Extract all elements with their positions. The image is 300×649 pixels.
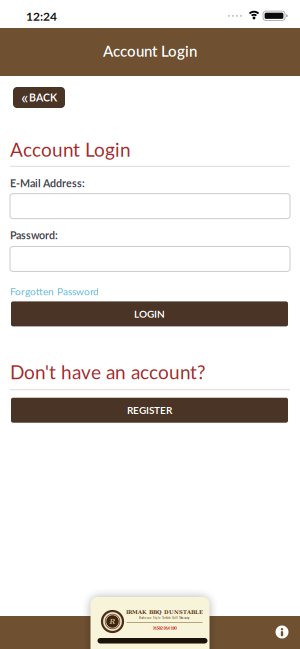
staticText: Account Login — [103, 42, 197, 60]
staticText: 12:24 — [26, 9, 57, 23]
staticText: R — [109, 617, 115, 626]
staticText: LOGIN — [134, 308, 165, 320]
staticText: Password: — [10, 229, 58, 241]
staticText: REGISTER — [127, 404, 172, 416]
button[interactable]: Info — [275, 625, 288, 638]
staticText: BACK — [29, 91, 57, 104]
staticText: Barbecue Style Turkish Grill Takeaway — [139, 616, 190, 620]
staticText: IRMAK BBQ DUNSTABLE — [126, 609, 203, 615]
staticText: E-Mail Address: — [10, 177, 85, 190]
staticText: « — [21, 87, 28, 107]
staticText: Don't have an account? — [10, 360, 206, 383]
staticText: Account Login — [10, 138, 131, 161]
staticText: Forgotten Password — [10, 285, 99, 297]
button[interactable]: REGISTER — [10, 398, 290, 423]
staticText: 01582 814 180 — [152, 625, 176, 630]
button[interactable]: Forgotten Password — [10, 285, 99, 297]
button[interactable]: « — [13, 87, 65, 108]
button[interactable]: LOGIN — [10, 301, 290, 326]
